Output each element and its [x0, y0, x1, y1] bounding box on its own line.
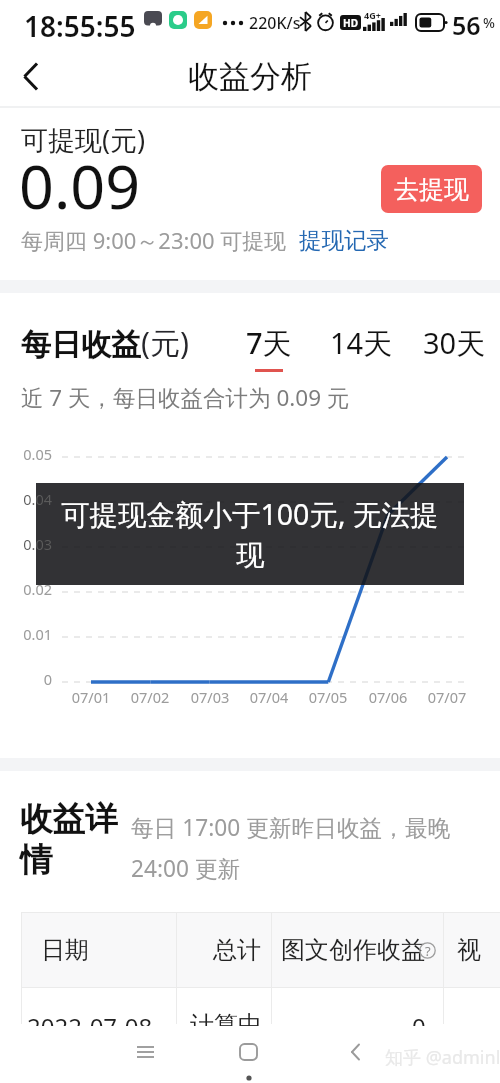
staticText: 计算中 — [190, 1010, 262, 1026]
staticText: 收益分析 — [188, 57, 312, 96]
staticText: 07/05 — [298, 687, 358, 707]
staticText: 0.09 — [19, 144, 141, 227]
staticText: 0 — [412, 1010, 426, 1026]
staticText: 视 — [457, 935, 481, 965]
staticText: 07/03 — [180, 687, 240, 707]
staticText: % — [483, 13, 495, 32]
button[interactable]: 7天 — [238, 323, 300, 372]
staticText: 30天 — [423, 323, 486, 363]
button[interactable]: Back — [325, 1026, 385, 1077]
staticText: 知乎 @adminly — [385, 1045, 500, 1070]
staticText: 去提现 — [394, 174, 469, 205]
staticText: 2022-07-08 — [27, 1010, 153, 1026]
staticText: 0.05 — [4, 444, 52, 464]
staticText: 07/06 — [358, 687, 418, 707]
staticText: 每日 17:00 更新昨日收益，最晚 24:00 更新 — [131, 812, 461, 884]
staticText: 0.02 — [4, 579, 52, 599]
staticText: 220K/s — [249, 12, 301, 34]
staticText: 收益详 — [20, 799, 118, 840]
staticText: 0.03 — [4, 534, 52, 554]
button[interactable]: Home — [218, 1026, 278, 1077]
staticText: 18:55:55 — [24, 7, 136, 45]
staticText: 近 7 天，每日收益合计为 0.09 元 — [21, 382, 350, 413]
staticText: 现 — [236, 538, 265, 574]
staticText: 07/01 — [61, 687, 121, 707]
button[interactable]: Recent apps — [115, 1026, 175, 1077]
staticText: 0.01 — [4, 624, 52, 644]
staticText: 56 — [452, 8, 481, 42]
staticText: 每周四 9:00～23:00 可提现 — [21, 225, 287, 255]
button[interactable]: 30天 — [415, 323, 494, 372]
staticText: 每日收益 — [21, 326, 141, 364]
staticText: HD — [343, 16, 358, 30]
button[interactable]: Back — [4, 46, 56, 107]
staticText: 0.04 — [4, 489, 52, 509]
button[interactable]: 去提现 — [381, 165, 482, 213]
staticText: 可提现(元) — [21, 121, 146, 158]
staticText: 情 — [20, 840, 53, 881]
staticText: 0 — [4, 669, 52, 689]
button[interactable]: 提现记录 — [299, 226, 389, 254]
staticText: (元) — [141, 322, 189, 363]
button[interactable]: 14天 — [322, 323, 401, 372]
staticText: 07/02 — [120, 687, 180, 707]
staticText: 07/04 — [239, 687, 299, 707]
staticText: ? — [425, 942, 431, 959]
staticText: 日期 — [41, 935, 89, 965]
staticText: 4G+ — [364, 9, 381, 21]
staticText: 图文创作收益 — [281, 935, 425, 965]
staticText: 可提现金额小于100元, 无法提 — [61, 495, 439, 534]
staticText: 7天 — [246, 323, 292, 363]
staticText: 总计 — [213, 935, 261, 965]
staticText: 07/07 — [417, 687, 477, 707]
staticText: 14天 — [330, 323, 393, 363]
